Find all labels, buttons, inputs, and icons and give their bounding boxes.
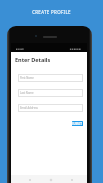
staticText: SUBMIT	[72, 122, 83, 126]
button[interactable]: Last Name	[18, 89, 83, 97]
staticText: Enter Details	[15, 56, 51, 63]
staticText: First Name	[20, 76, 34, 80]
button[interactable]: SUBMIT	[72, 121, 83, 126]
button[interactable]: Recent apps	[67, 175, 76, 183]
button[interactable]: Home	[46, 175, 55, 183]
button[interactable]: Email Address	[18, 104, 83, 112]
staticText: CREATE PROFILE	[0, 9, 103, 15]
button[interactable]: Back	[25, 175, 34, 183]
staticText: Last Name	[20, 91, 34, 95]
button[interactable]: First Name	[18, 74, 83, 82]
staticText: Email Address	[20, 106, 38, 110]
